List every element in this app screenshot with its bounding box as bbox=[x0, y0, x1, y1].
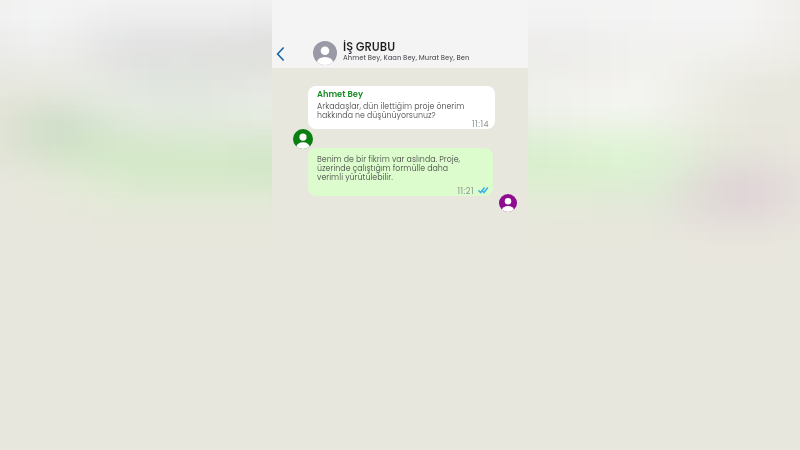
button[interactable]: Ahmet Bey bbox=[308, 86, 495, 129]
staticText: 11:14 bbox=[472, 119, 489, 129]
staticText: Ahmet Bey bbox=[317, 88, 363, 100]
staticText: 11:21 bbox=[457, 186, 474, 196]
button[interactable]: Back bbox=[268, 37, 292, 70]
staticText: İŞ GRUBU bbox=[343, 39, 396, 55]
staticText: Arkadaşlar, dün ilettiğim proje önerim h… bbox=[317, 101, 465, 121]
button[interactable]: Benim de bir fikrim var aslında. Proje, … bbox=[308, 148, 493, 196]
staticText: Benim de bir fikrim var aslında. Proje, … bbox=[317, 154, 461, 183]
staticText: Ahmet Bey, Kaan Bey, Murat Bey, Ben bbox=[343, 53, 470, 63]
